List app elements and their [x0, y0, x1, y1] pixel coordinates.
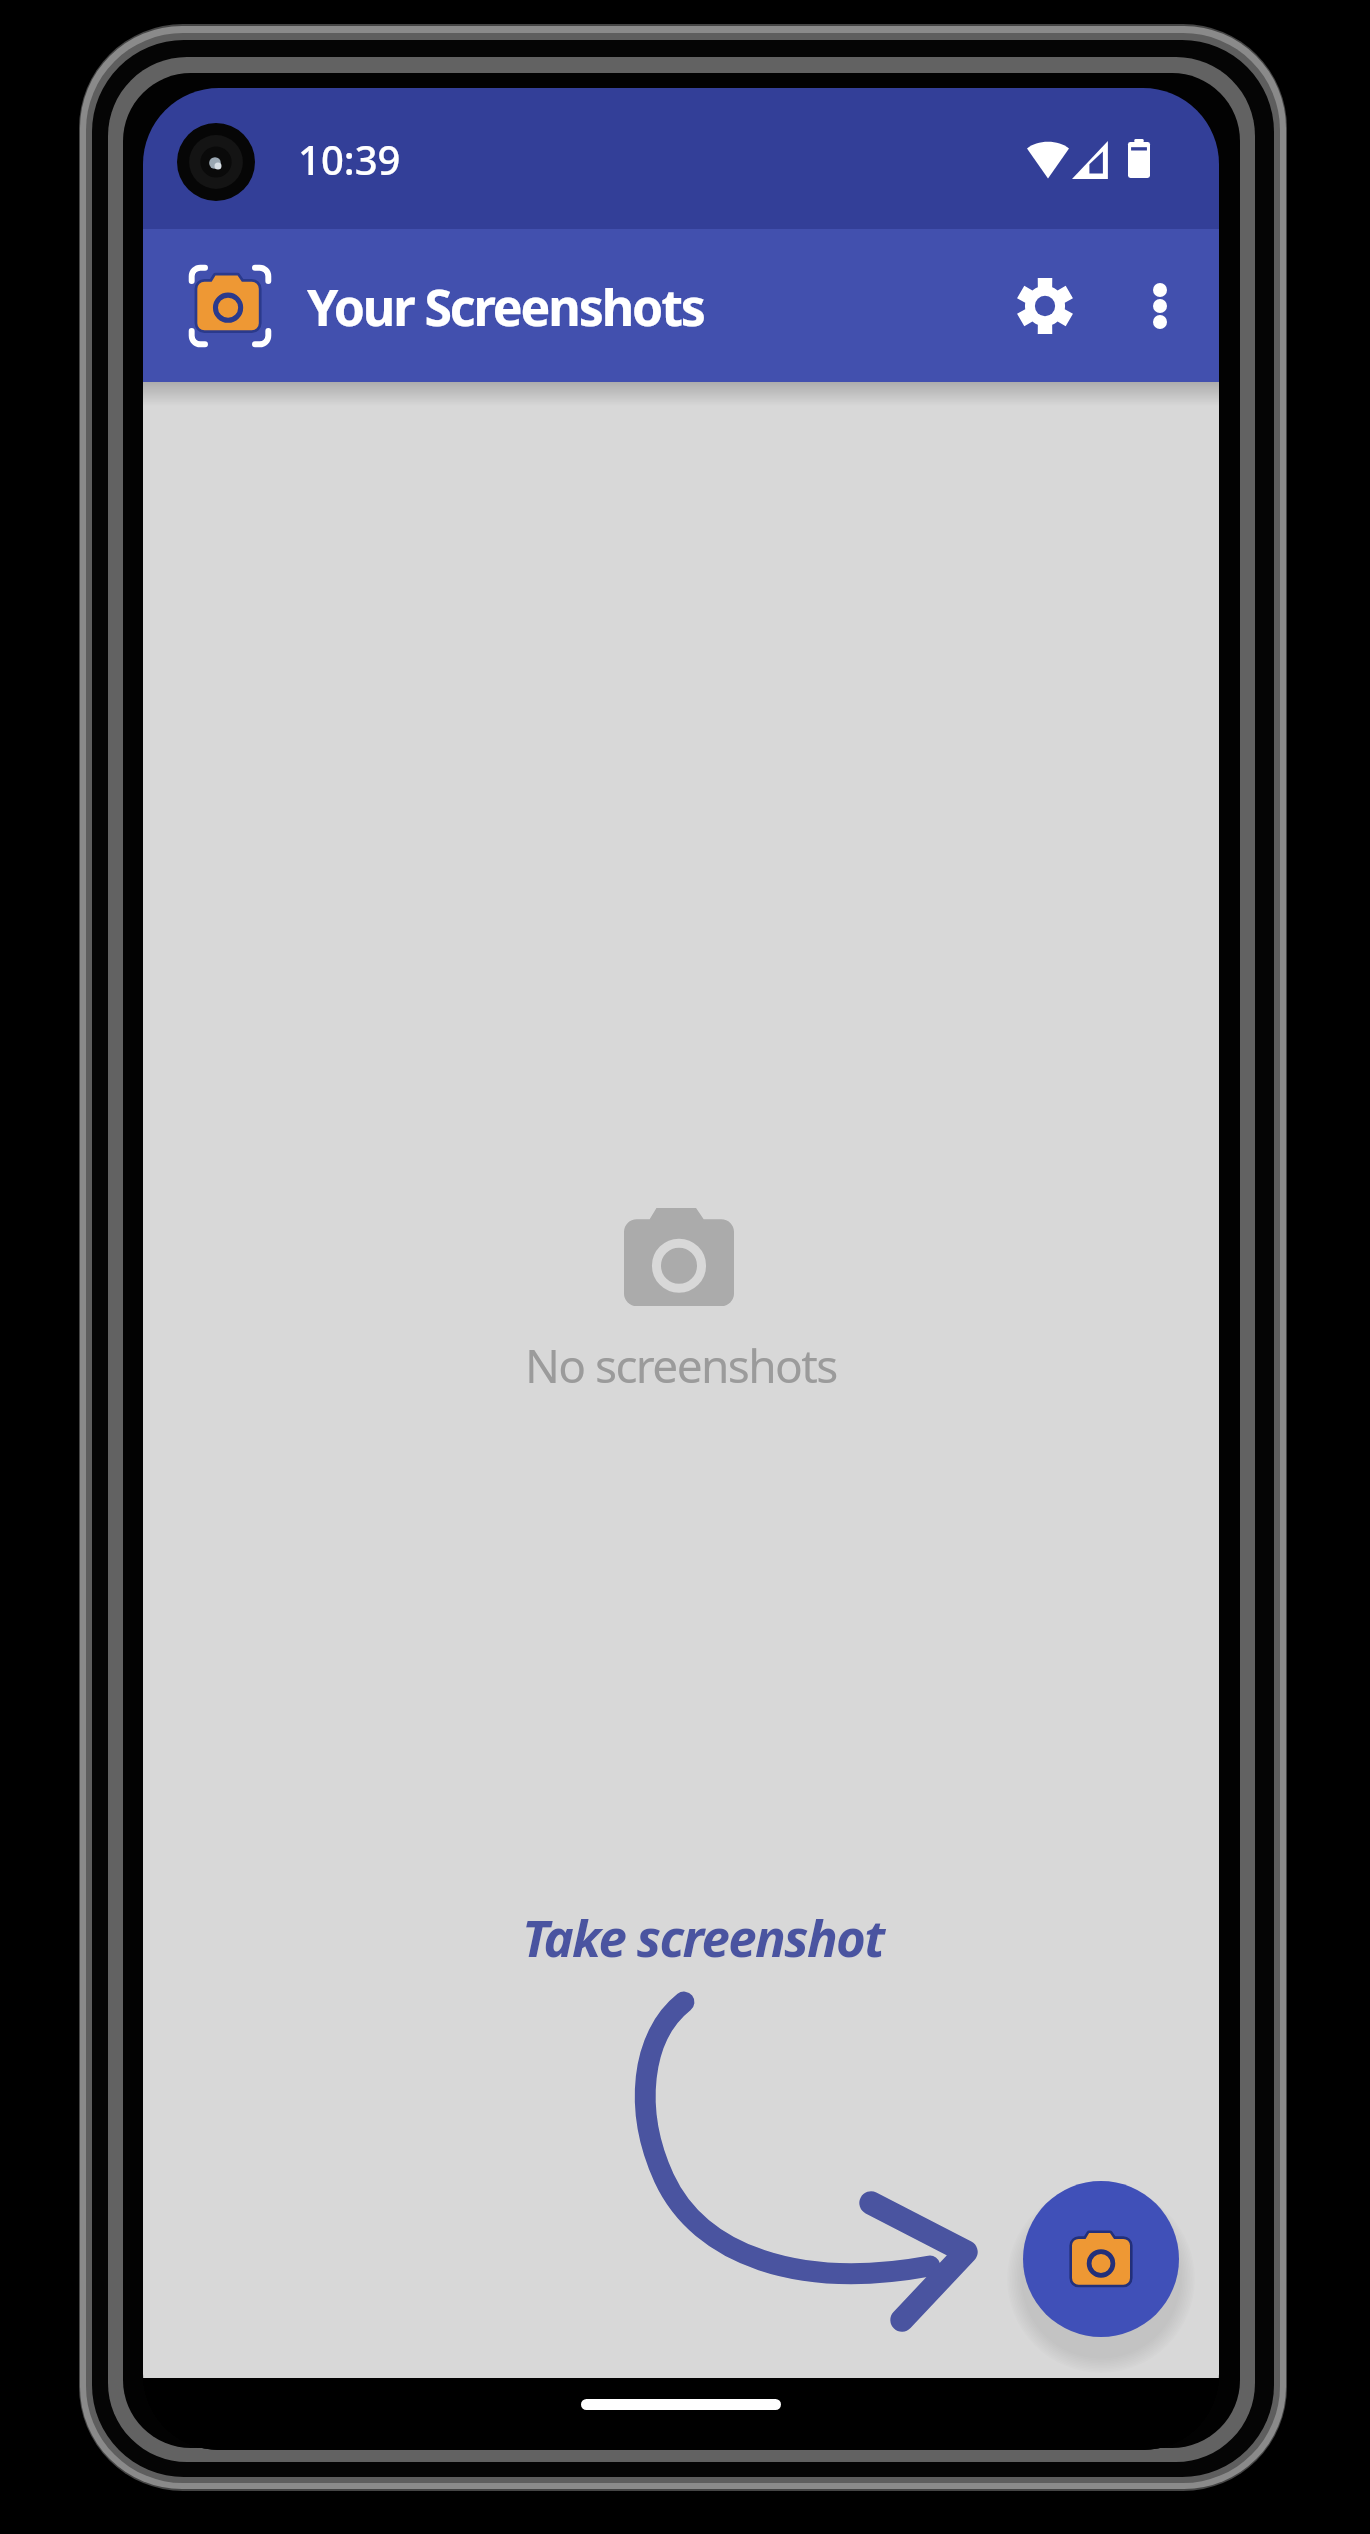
button[interactable]: More options [1105, 251, 1215, 361]
staticText: Take screenshot [522, 1902, 884, 1971]
staticText: 10:39 [298, 132, 401, 186]
staticText: Your Screenshots [307, 273, 704, 341]
staticText: No screenshots [525, 1334, 837, 1397]
button[interactable]: Take screenshot [1023, 2181, 1179, 2337]
button[interactable]: Settings [990, 251, 1100, 361]
